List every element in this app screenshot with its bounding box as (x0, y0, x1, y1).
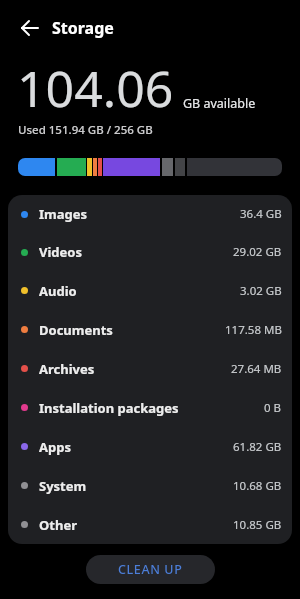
button[interactable]: Documents (8, 310, 292, 349)
button[interactable]: Installation packages (8, 388, 292, 427)
staticText: 10.68 GB (233, 478, 282, 494)
staticText: 3.02 GB (240, 283, 282, 299)
button[interactable]: Other (8, 505, 292, 544)
staticText: 29.02 GB (233, 244, 282, 260)
staticText: Apps (39, 438, 71, 456)
staticText: Documents (39, 321, 113, 339)
staticText: 10.85 GB (233, 517, 282, 533)
button[interactable] (16, 14, 44, 42)
staticText: Images (39, 205, 88, 223)
staticText: Audio (39, 282, 77, 300)
staticText: Installation packages (39, 399, 179, 417)
staticText: 27.64 MB (231, 361, 282, 377)
staticText: GB available (183, 95, 256, 112)
staticText: CLEAN UP (118, 561, 183, 578)
staticText: Used 151.94 GB / 256 GB (18, 122, 153, 138)
button[interactable]: Images (8, 195, 292, 233)
staticText: Videos (39, 243, 82, 261)
staticText: Storage (52, 17, 114, 39)
staticText: System (39, 477, 87, 495)
button[interactable]: Audio (8, 271, 292, 310)
button[interactable]: System (8, 466, 292, 505)
staticText: 117.58 MB (225, 322, 282, 338)
staticText: 0 B (264, 400, 282, 416)
staticText: Archives (39, 360, 95, 378)
staticText: Other (39, 516, 77, 534)
button[interactable]: Videos (8, 233, 292, 271)
button[interactable]: CLEAN UP (86, 555, 215, 584)
button[interactable]: Apps (8, 427, 292, 466)
staticText: 36.4 GB (240, 206, 282, 222)
button[interactable]: Archives (8, 349, 292, 388)
staticText: 61.82 GB (233, 439, 282, 455)
staticText: 104.06 (17, 54, 174, 122)
